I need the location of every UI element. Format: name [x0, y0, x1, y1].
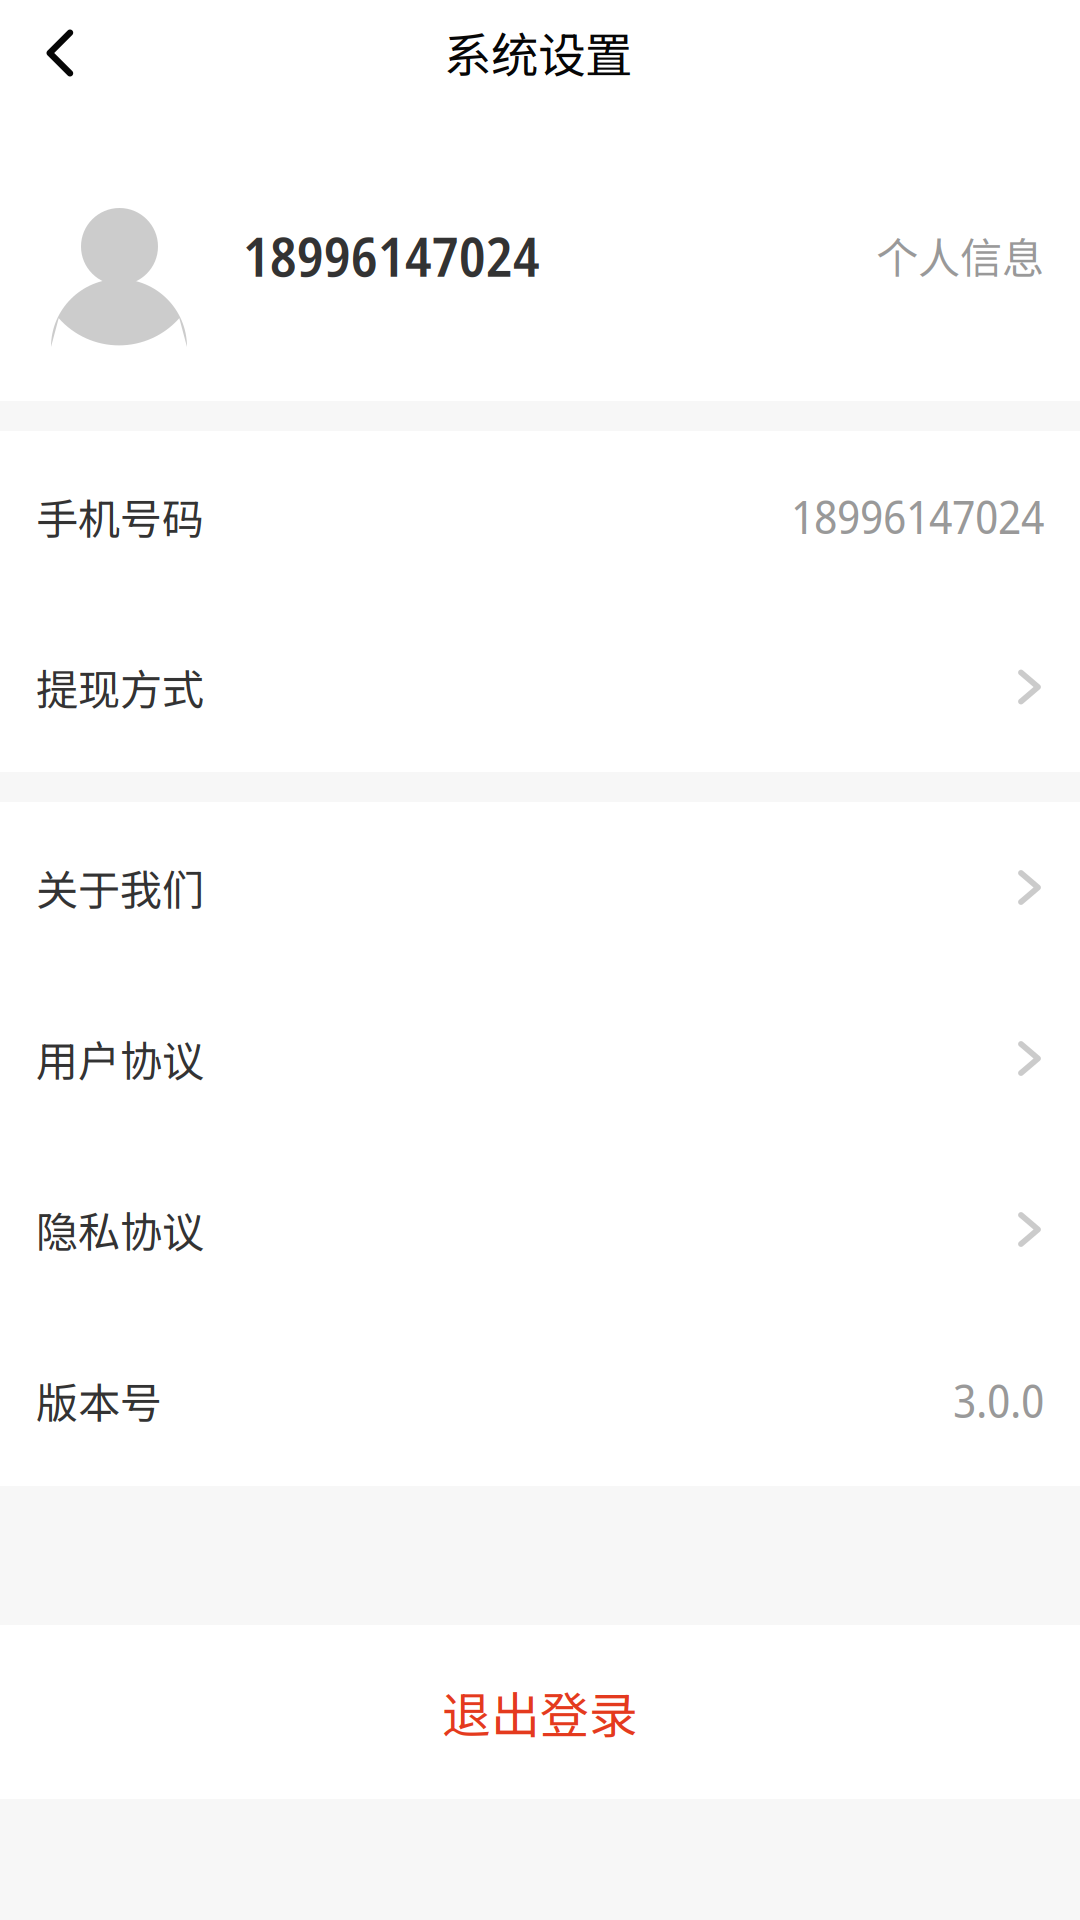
button[interactable]: 版本号 [0, 1315, 1080, 1486]
button[interactable]: 关于我们 [0, 802, 1080, 973]
staticText: 提现方式 [36, 656, 204, 717]
staticText: 退出登录 [442, 1677, 638, 1747]
button[interactable]: 提现方式 [0, 602, 1080, 772]
staticText: 手机号码 [36, 486, 204, 547]
staticText: 18996147024 [791, 486, 1044, 547]
staticText: 3.0.0 [953, 1370, 1044, 1431]
button[interactable]: 18996147024 [0, 110, 1080, 401]
button[interactable]: 隐私协议 [0, 1144, 1080, 1315]
staticText: 18996147024 [243, 218, 540, 293]
staticText: 用户协议 [36, 1028, 204, 1089]
button[interactable]: 退出登录 [0, 1625, 1080, 1799]
staticText: 版本号 [36, 1370, 162, 1431]
staticText: 系统设置 [444, 18, 632, 86]
button[interactable]: Back [0, 2, 116, 108]
button[interactable]: 用户协议 [0, 973, 1080, 1144]
button[interactable]: 手机号码 [0, 431, 1080, 602]
staticText: 隐私协议 [36, 1199, 204, 1260]
staticText: 关于我们 [36, 857, 204, 918]
staticText: 个人信息 [876, 225, 1044, 286]
